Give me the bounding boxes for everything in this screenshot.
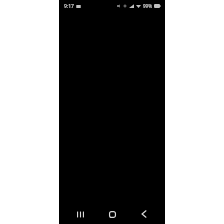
staticText: 9:17 (64, 3, 74, 10)
staticText: 99% (143, 3, 152, 9)
button[interactable]: Home (101, 204, 123, 224)
button[interactable]: Back (133, 204, 155, 224)
button[interactable]: Recent apps (69, 204, 91, 224)
